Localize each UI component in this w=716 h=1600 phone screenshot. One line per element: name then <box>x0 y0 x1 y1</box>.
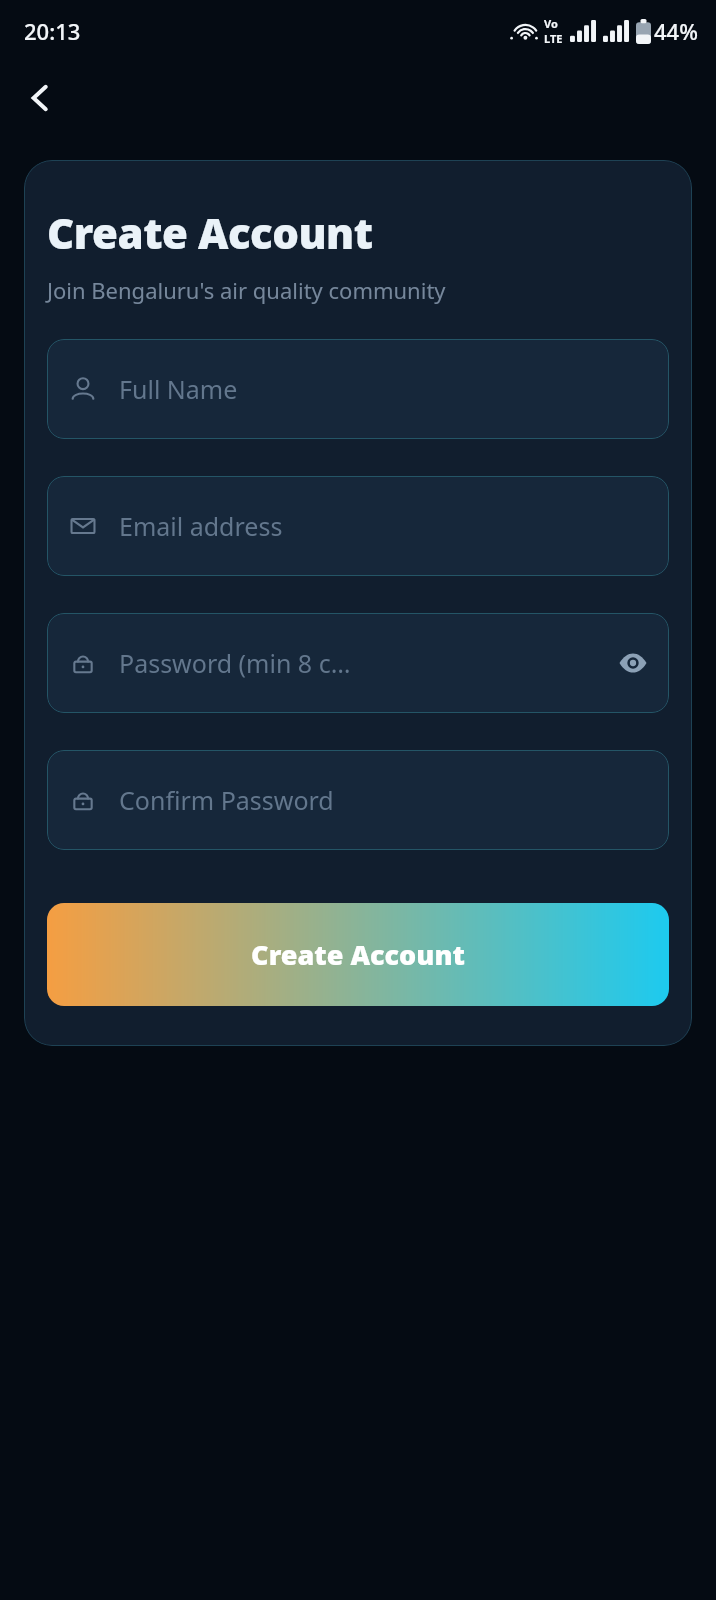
button[interactable]: Show password <box>611 641 655 685</box>
button[interactable]: Full Name <box>47 339 669 439</box>
staticText: LTE <box>544 31 563 46</box>
button[interactable]: Back <box>12 70 68 126</box>
staticText: Vo <box>544 16 558 31</box>
staticText: Join Bengaluru's air quality community <box>47 275 446 305</box>
staticText: Full Name <box>119 372 611 406</box>
button[interactable]: Create Account <box>47 903 669 1006</box>
staticText: Create Account <box>47 204 373 261</box>
staticText: Create Account <box>251 936 465 973</box>
staticText: 44% <box>654 16 698 46</box>
staticText: Password (min 8 c… <box>119 646 611 680</box>
button[interactable]: Email address <box>47 476 669 576</box>
staticText: Confirm Password <box>119 783 611 817</box>
staticText: 20:13 <box>24 16 81 46</box>
button[interactable]: Password (min 8 c… <box>47 613 669 713</box>
button[interactable]: Confirm Password <box>47 750 669 850</box>
staticText: Email address <box>119 509 611 543</box>
